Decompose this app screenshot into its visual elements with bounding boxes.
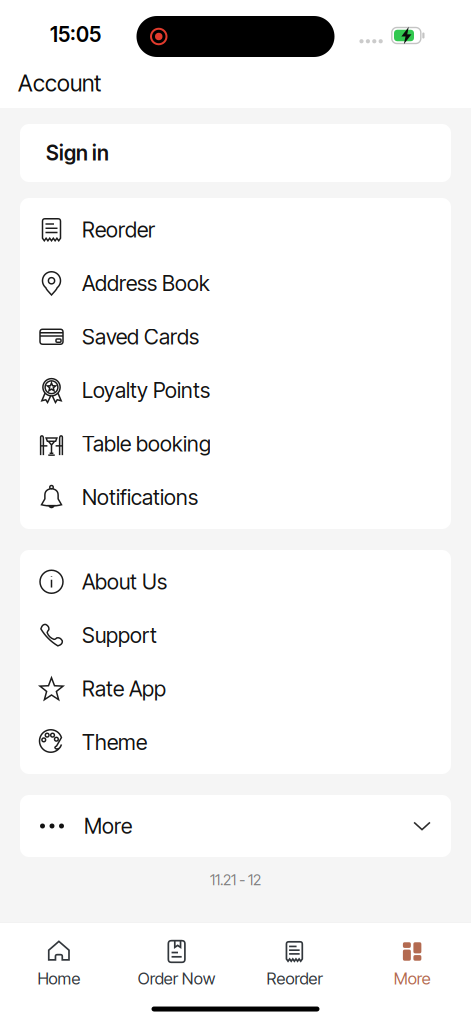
staticText: 15:05 xyxy=(50,22,101,47)
staticText: More xyxy=(394,968,431,988)
staticText: More xyxy=(84,813,132,839)
staticText: Rate App xyxy=(82,676,166,702)
button[interactable]: Theme xyxy=(20,715,451,769)
button[interactable]: Sign in xyxy=(20,124,451,182)
button[interactable]: Reorder xyxy=(20,203,451,256)
staticText: Table booking xyxy=(82,431,211,457)
staticText: Account xyxy=(18,69,101,97)
button[interactable]: Reorder xyxy=(235,940,353,988)
staticText: Support xyxy=(82,622,157,648)
button[interactable]: Order Now xyxy=(118,940,236,988)
button[interactable]: Address Book xyxy=(20,256,451,310)
staticText: Saved Cards xyxy=(82,324,199,350)
staticText: 11.21 - 12 xyxy=(210,871,261,889)
staticText: Reorder xyxy=(82,217,155,243)
staticText: Order Now xyxy=(138,968,216,988)
staticText: Theme xyxy=(82,729,147,755)
button[interactable]: Loyalty Points xyxy=(20,363,451,417)
staticText: Notifications xyxy=(82,484,198,510)
staticText: Address Book xyxy=(82,270,210,296)
staticText: Loyalty Points xyxy=(82,377,210,403)
staticText: Reorder xyxy=(266,968,322,988)
button[interactable]: Home xyxy=(0,940,118,988)
staticText: Home xyxy=(37,968,80,988)
staticText: About Us xyxy=(82,569,167,595)
button[interactable]: Rate App xyxy=(20,662,451,715)
button[interactable]: More xyxy=(20,795,451,857)
button[interactable]: Support xyxy=(20,608,451,662)
button[interactable]: Table booking xyxy=(20,417,451,470)
button[interactable]: Saved Cards xyxy=(20,310,451,363)
button[interactable]: About Us xyxy=(20,555,451,608)
button[interactable]: Notifications xyxy=(20,470,451,524)
staticText: Sign in xyxy=(46,140,109,165)
button[interactable]: More xyxy=(353,940,471,988)
